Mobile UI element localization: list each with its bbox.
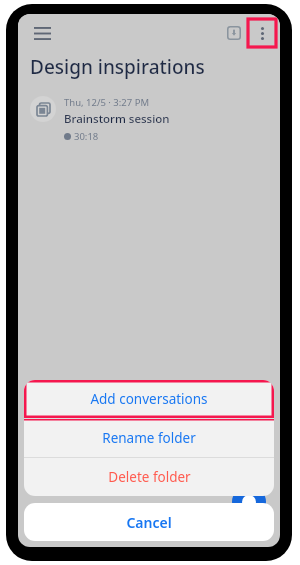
button[interactable]: Menu [26,17,58,49]
button[interactable]: Delete folder [24,458,274,496]
button[interactable]: Record [232,485,266,519]
staticText: Thu, 12/5 · 3:27 PM [64,96,150,109]
button[interactable]: Save [220,19,248,47]
staticText: Brainstorm session [64,111,170,127]
staticText: Design inspirations [30,54,205,80]
staticText: Cancel [126,513,172,532]
button[interactable]: Thu, 12/5 · 3:27 PM [18,90,280,149]
staticText: Delete folder [108,468,191,486]
button[interactable]: More options [248,19,276,47]
button[interactable]: Cancel [24,503,274,541]
staticText: Rename folder [102,429,196,447]
button[interactable]: Rename folder [24,419,274,457]
staticText: 30:18 [74,130,99,143]
button[interactable]: Add conversations [24,380,274,418]
staticText: Add conversations [90,390,208,408]
